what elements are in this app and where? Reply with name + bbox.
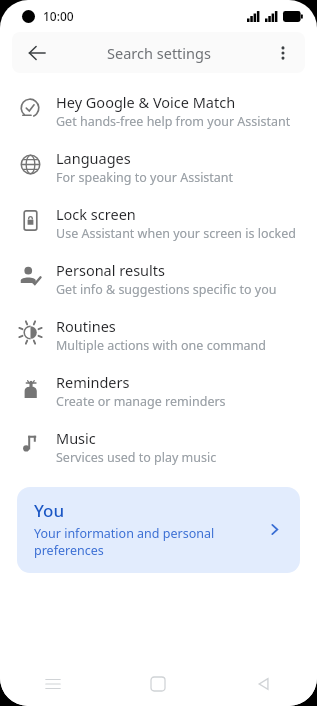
staticText: Lock screen <box>56 204 136 224</box>
staticText: Create or manage reminders <box>56 393 226 410</box>
staticText: Routines <box>56 316 116 336</box>
button[interactable]: More options <box>267 37 299 69</box>
button[interactable]: Lock screen <box>0 195 317 251</box>
button[interactable]: Reminders <box>0 363 317 419</box>
staticText: 10:00 <box>43 8 74 24</box>
button[interactable]: Back <box>12 32 305 73</box>
button[interactable]: Back <box>211 662 317 706</box>
staticText: Reminders <box>56 372 130 392</box>
staticText: Use Assistant when your screen is locked <box>56 225 296 242</box>
button[interactable]: Recent apps <box>0 662 105 706</box>
staticText: Hey Google & Voice Match <box>56 92 236 112</box>
button[interactable]: Back <box>20 36 54 70</box>
button[interactable]: Routines <box>0 307 317 363</box>
staticText: For speaking to your Assistant <box>56 169 234 186</box>
staticText: Languages <box>56 148 131 168</box>
button[interactable]: Home <box>105 662 211 706</box>
staticText: Get hands-free help from your Assistant <box>56 113 291 130</box>
staticText: Multiple actions with one command <box>56 337 267 354</box>
staticText: You <box>34 499 65 522</box>
button[interactable]: You <box>17 487 300 573</box>
staticText: Personal results <box>56 260 165 280</box>
button[interactable]: Personal results <box>0 251 317 307</box>
button[interactable]: Hey Google & Voice Match <box>0 83 317 139</box>
staticText: Your information and personal preference… <box>34 525 241 559</box>
staticText: Search settings <box>107 43 211 63</box>
button[interactable]: Languages <box>0 139 317 195</box>
staticText: Get info & suggestions specific to you <box>56 281 277 298</box>
staticText: Music <box>56 428 96 448</box>
staticText: Services used to play music <box>56 449 217 466</box>
button[interactable]: Music <box>0 419 317 475</box>
